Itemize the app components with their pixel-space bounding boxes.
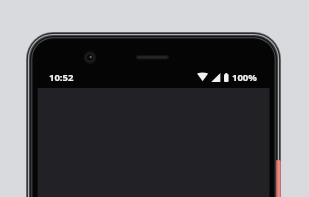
button[interactable]: Phone device screen preview xyxy=(0,0,309,197)
